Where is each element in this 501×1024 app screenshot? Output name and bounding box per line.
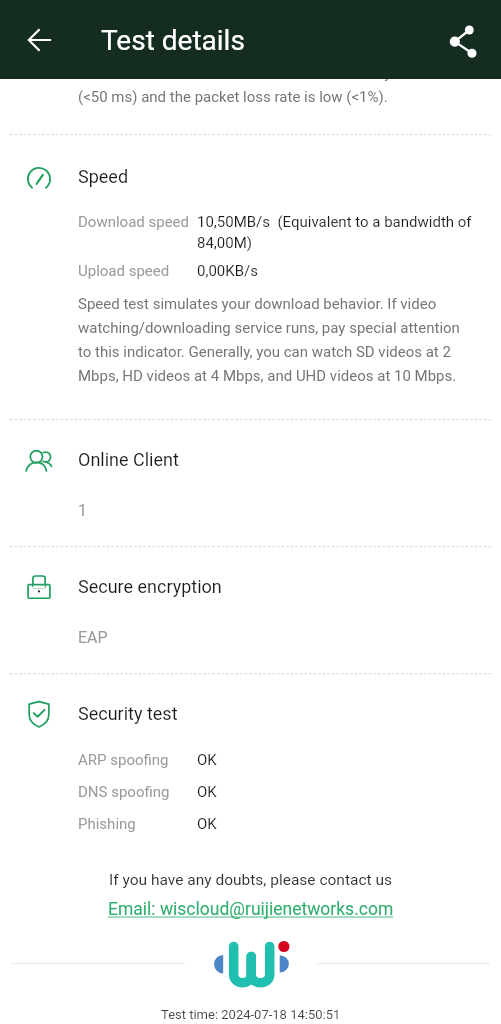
staticText: Download speed xyxy=(78,213,190,231)
staticText: EAP xyxy=(78,628,108,647)
staticText: Phishing xyxy=(78,815,136,833)
staticText: 0,00KB/s xyxy=(197,262,258,280)
staticText: If you have any doubts, please contact u… xyxy=(109,871,392,889)
button[interactable]: Email: wiscloud@ruijienetworks.com xyxy=(108,899,394,920)
staticText: Secure encryption xyxy=(78,576,222,597)
button[interactable]: Share xyxy=(439,17,486,64)
staticText: Speed test simulates your download behav… xyxy=(78,295,468,384)
staticText: DNS spoofing xyxy=(78,783,170,801)
staticText: Test details xyxy=(101,24,245,57)
staticText: OK xyxy=(197,751,217,769)
staticText: 10,50MB/s (Equivalent to a bandwidth of … xyxy=(197,213,487,251)
button[interactable]: Back xyxy=(16,16,63,63)
staticText: ARP spoofing xyxy=(78,751,169,769)
staticText: Upload speed xyxy=(78,262,170,280)
staticText: 1 xyxy=(78,501,87,520)
staticText: OK xyxy=(197,815,217,833)
staticText: Test time: 2024-07-18 14:50:51 xyxy=(161,1007,341,1022)
staticText: OK xyxy=(197,783,217,801)
staticText: attention to this indicator. Ensure that… xyxy=(78,64,446,82)
staticText: Online Client xyxy=(78,449,179,470)
staticText: Speed xyxy=(78,166,129,187)
staticText: Security test xyxy=(78,703,178,724)
staticText: (<50 ms) and the packet loss rate is low… xyxy=(78,88,388,106)
